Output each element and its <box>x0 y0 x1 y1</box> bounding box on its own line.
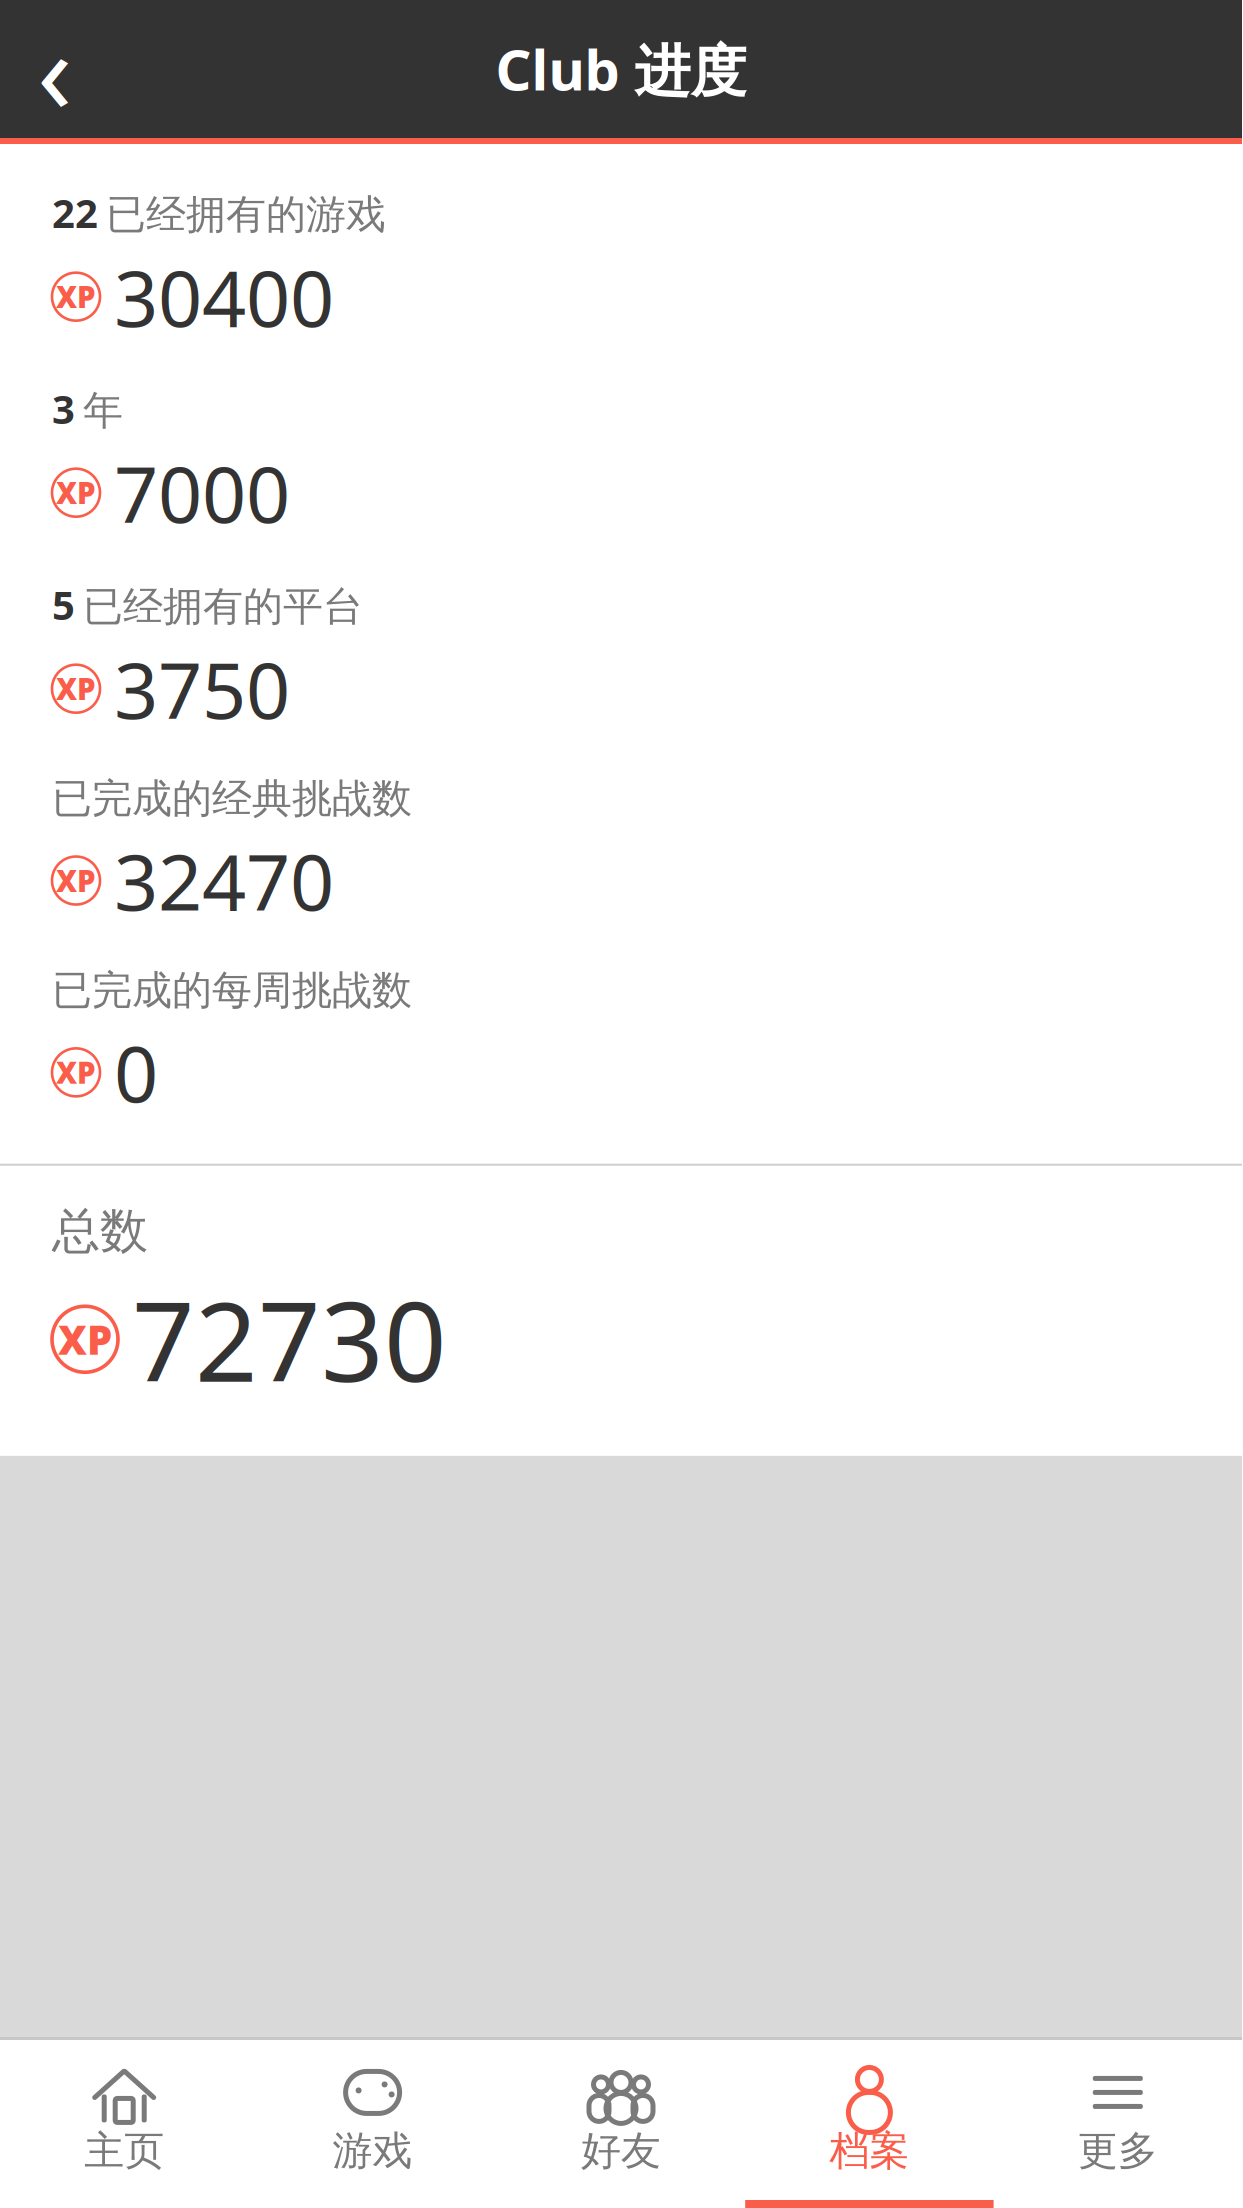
staticText: 30400 <box>114 245 334 348</box>
staticText: XP <box>58 1313 112 1366</box>
staticText: 22 <box>52 186 98 239</box>
staticText: ‹ <box>37 0 73 145</box>
button[interactable]: 档案 <box>745 2040 994 2208</box>
staticText: 已经拥有的平台 <box>83 582 363 631</box>
staticText: 已完成的每周挑战数 <box>52 966 412 1015</box>
staticText: 32470 <box>114 829 334 932</box>
staticText: Club 进度 <box>495 32 746 106</box>
staticText: 游戏 <box>333 2126 413 2175</box>
staticText: XP <box>56 1053 96 1092</box>
staticText: 主页 <box>84 2126 164 2175</box>
staticText: 年 <box>83 386 123 435</box>
button[interactable]: 游戏 <box>248 2040 497 2208</box>
button[interactable]: 主页 <box>0 2040 248 2208</box>
staticText: 总数 <box>52 1202 148 1261</box>
staticText: XP <box>56 669 96 708</box>
staticText: XP <box>56 861 96 900</box>
staticText: 5 <box>52 578 75 631</box>
button[interactable]: 更多 <box>994 2040 1242 2208</box>
staticText: 更多 <box>1078 2126 1158 2175</box>
button[interactable]: 好友 <box>497 2040 745 2208</box>
staticText: 3750 <box>114 637 290 740</box>
staticText: XP <box>56 473 96 512</box>
staticText: 已完成的经典挑战数 <box>52 774 412 823</box>
staticText: 已经拥有的游戏 <box>106 190 386 239</box>
staticText: XP <box>56 277 96 316</box>
staticText: 0 <box>114 1021 158 1124</box>
button[interactable]: Back <box>0 14 110 124</box>
staticText: 7000 <box>114 441 290 544</box>
staticText: 3 <box>52 382 75 435</box>
staticText: 好友 <box>581 2126 661 2175</box>
staticText: 档案 <box>829 2126 909 2175</box>
staticText: 72730 <box>132 1267 447 1412</box>
